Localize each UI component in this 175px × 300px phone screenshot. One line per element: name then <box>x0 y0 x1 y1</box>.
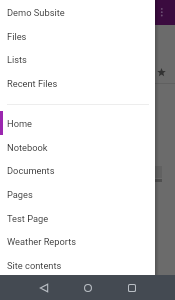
staticText: Recent Files <box>7 78 58 89</box>
staticText: Documents <box>7 165 55 176</box>
staticText: Site contents <box>7 260 62 271</box>
button[interactable]: Test Page <box>0 206 155 230</box>
staticText: Files <box>7 31 27 42</box>
button[interactable]: Pages <box>0 182 155 206</box>
button[interactable]: Lists <box>0 47 155 71</box>
staticText: Notebook <box>7 142 48 153</box>
button[interactable]: More options <box>156 3 168 21</box>
button[interactable]: Home <box>0 111 155 135</box>
staticText: Demo Subsite <box>7 7 65 18</box>
button[interactable]: Home <box>76 276 99 299</box>
button[interactable]: Files <box>0 24 155 48</box>
button[interactable]: Back <box>32 276 55 299</box>
staticText: Weather Reports <box>7 236 77 247</box>
button[interactable]: Documents <box>0 158 155 182</box>
button[interactable]: Notebook <box>0 135 155 159</box>
button[interactable]: Weather Reports <box>0 229 155 253</box>
button[interactable]: Recent apps <box>120 276 143 299</box>
staticText: Test Page <box>7 213 49 224</box>
button[interactable]: Site contents <box>0 253 155 277</box>
button[interactable]: Recent Files <box>0 71 155 95</box>
staticText: Pages <box>7 189 33 200</box>
button[interactable]: Demo Subsite <box>0 0 155 24</box>
staticText: Lists <box>7 54 27 65</box>
staticText: Home <box>7 118 33 129</box>
